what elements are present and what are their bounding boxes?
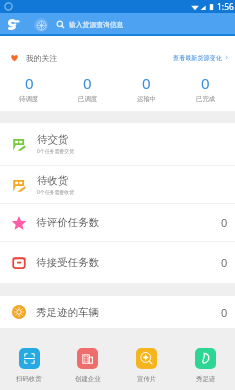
staticText: 待评价任务数 bbox=[36, 216, 99, 229]
button[interactable]: 0 bbox=[0, 69, 58, 111]
staticText: 0个任务需要收货 bbox=[37, 189, 75, 196]
staticText: 1:56 bbox=[217, 1, 234, 13]
staticText: 已完成 bbox=[196, 95, 216, 103]
button[interactable]: 扫码收货 bbox=[0, 328, 58, 390]
staticText: 0 bbox=[142, 73, 151, 93]
staticText: 待接受任务数 bbox=[36, 256, 99, 269]
button[interactable]: 待评价任务数 bbox=[0, 204, 235, 241]
button[interactable]: 秀足迹的车辆 bbox=[0, 296, 235, 328]
button[interactable]: 创建企业 bbox=[58, 328, 117, 390]
button[interactable]: 我的关注 bbox=[0, 36, 235, 69]
button[interactable]: Logo bbox=[7, 18, 20, 31]
staticText: 扫码收货 bbox=[16, 375, 42, 383]
staticText: 0 bbox=[83, 73, 92, 93]
staticText: 运输中 bbox=[137, 95, 157, 103]
staticText: 查看最新货源变化 bbox=[173, 54, 222, 62]
button[interactable]: 0 bbox=[176, 69, 235, 111]
staticText: 0 bbox=[221, 255, 228, 270]
staticText: 0 bbox=[201, 73, 210, 93]
button[interactable]: 秀足迹 bbox=[176, 328, 235, 390]
staticText: 0 bbox=[221, 305, 228, 320]
staticText: 0 bbox=[221, 215, 228, 230]
button[interactable]: 0 bbox=[117, 69, 176, 111]
staticText: 待交货 bbox=[37, 133, 69, 146]
button[interactable]: Navigation bbox=[34, 18, 48, 32]
button[interactable]: 输入货源查询信息 bbox=[56, 13, 235, 36]
button[interactable]: 宣传片 bbox=[117, 328, 176, 390]
staticText: 秀足迹 bbox=[196, 375, 216, 383]
staticText: 0 bbox=[25, 73, 34, 93]
staticText: 待调度 bbox=[19, 95, 39, 103]
staticText: 秀足迹的车辆 bbox=[36, 306, 99, 319]
staticText: 0个任务需要交货 bbox=[37, 148, 75, 155]
staticText: 宣传片 bbox=[137, 375, 157, 383]
button[interactable]: 0 bbox=[58, 69, 117, 111]
staticText: 已调度 bbox=[78, 95, 98, 103]
button[interactable]: 待收货 bbox=[0, 166, 235, 203]
button[interactable]: 待交货 bbox=[0, 123, 235, 165]
staticText: 创建企业 bbox=[75, 375, 101, 383]
staticText: 输入货源查询信息 bbox=[69, 20, 124, 29]
button[interactable]: 待接受任务数 bbox=[0, 242, 235, 283]
staticText: 我的关注 bbox=[26, 53, 58, 63]
staticText: 待收货 bbox=[37, 174, 69, 187]
